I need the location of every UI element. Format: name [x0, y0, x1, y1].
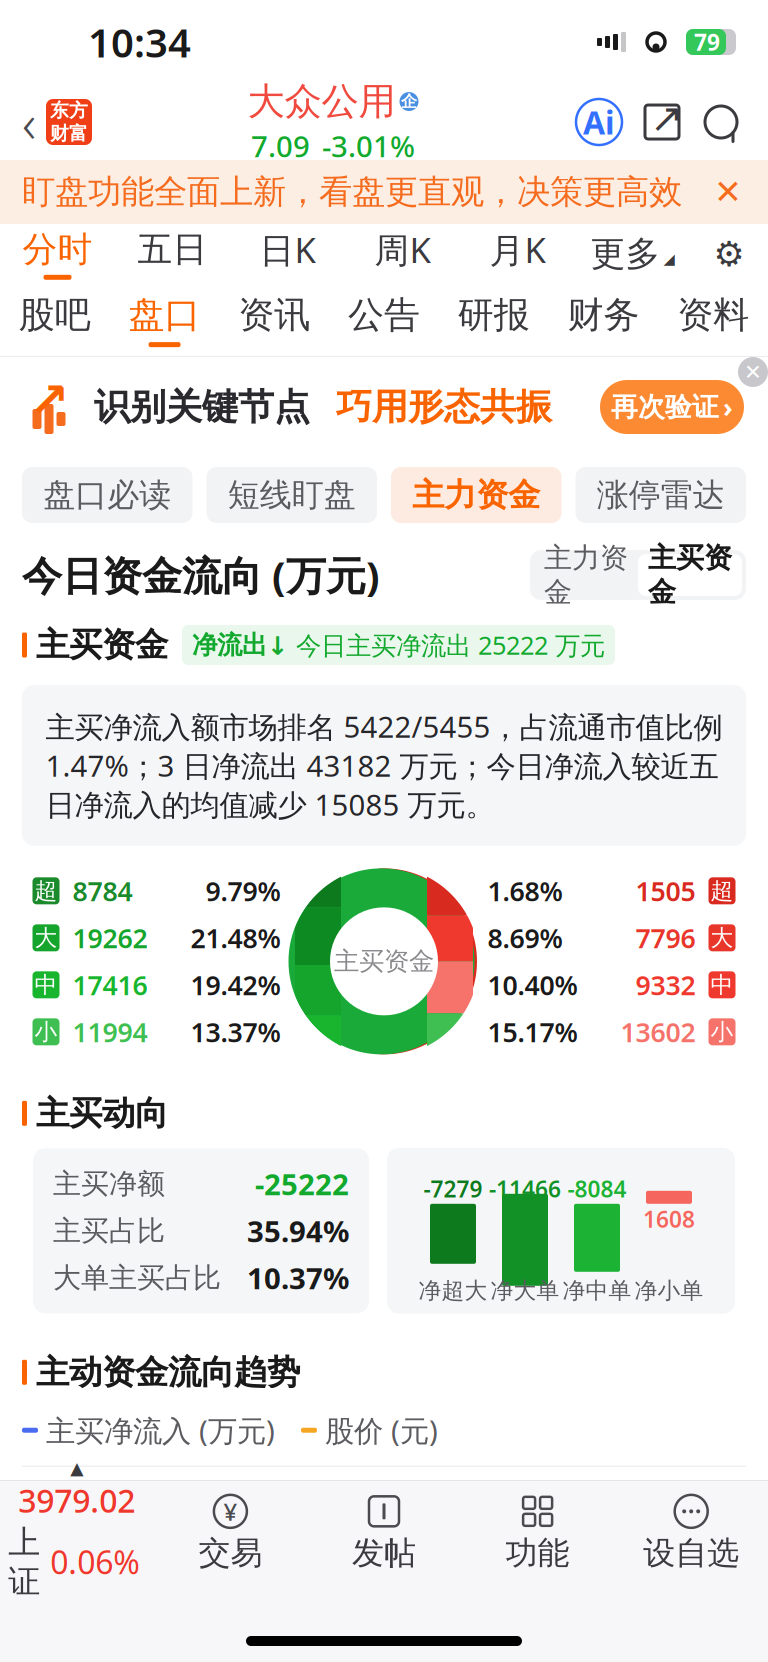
button[interactable]: 发帖	[307, 1493, 461, 1573]
staticText: 主力资金	[544, 541, 628, 609]
staticText: 大	[34, 924, 57, 952]
staticText: 13.37%	[190, 1014, 280, 1050]
staticText: 9332	[635, 967, 695, 1003]
staticText: 主买资金	[648, 541, 732, 609]
button[interactable]: ¥	[154, 1493, 307, 1573]
staticText: Ai	[583, 101, 615, 143]
button[interactable]: 设自选	[614, 1493, 768, 1573]
staticText: 盘口	[129, 293, 201, 337]
staticText: 10.40%	[487, 967, 577, 1003]
staticText: 公告	[348, 293, 420, 337]
staticText: 9.79%	[205, 873, 280, 909]
button[interactable]: 日K	[230, 224, 345, 284]
staticText: 17416	[72, 967, 147, 1003]
staticText: 7796	[635, 920, 695, 956]
button[interactable]: 盘口	[110, 284, 219, 356]
staticText: 大单主买占比	[53, 1261, 221, 1295]
staticText: ›	[723, 389, 733, 425]
button[interactable]: 功能	[461, 1493, 614, 1573]
staticText: -25222	[255, 1164, 349, 1203]
staticText: 净中单	[562, 1277, 631, 1305]
button[interactable]: ▲	[0, 1458, 154, 1608]
staticText: 13602	[620, 1014, 695, 1050]
button[interactable]: 盯盘功能全面上新，看盘更直观，决策更高效	[0, 160, 768, 224]
staticText: 研报	[458, 293, 530, 337]
button[interactable]: 主买资金	[638, 554, 742, 596]
staticText: -7279	[423, 1174, 482, 1204]
staticText: 企	[401, 92, 417, 111]
staticText: ⚙	[713, 234, 744, 274]
staticText: ↗	[29, 373, 69, 427]
staticText: 东方 财富	[50, 99, 88, 145]
staticText: 11994	[72, 1014, 147, 1050]
staticText: 超	[710, 877, 733, 905]
staticText: 主买净额	[53, 1167, 165, 1201]
staticText: 涨停雷达	[597, 475, 725, 515]
staticText: 净大单	[490, 1277, 559, 1305]
button[interactable]: 短线盯盘	[206, 467, 377, 523]
staticText: 1608	[643, 1204, 695, 1234]
button[interactable]: Share	[642, 101, 682, 143]
staticText: 周K	[374, 226, 430, 272]
staticText: -3.01%	[322, 126, 415, 165]
staticText: 19.42%	[190, 967, 280, 1003]
staticText: 五日	[137, 228, 207, 271]
button[interactable]: 盘口必读	[22, 467, 192, 523]
button[interactable]: 分时	[0, 224, 115, 284]
staticText: 主买资金	[334, 946, 434, 977]
button[interactable]: Search	[700, 101, 742, 143]
staticText: 大	[710, 924, 733, 952]
button[interactable]: 月K	[460, 224, 575, 284]
staticText: 再次验证	[611, 391, 719, 423]
staticText: 主买净流入 (万元)	[46, 1411, 275, 1450]
staticText: 主买净流入额市场排名 5422/5455，占流通市值比例 1.47%；3 日净流…	[45, 707, 722, 824]
staticText: 短线盯盘	[228, 475, 356, 515]
button[interactable]: Back	[0, 87, 92, 157]
staticText: 0.06%	[50, 1541, 140, 1583]
staticText: 35.94%	[247, 1211, 349, 1250]
button[interactable]: 研报	[439, 284, 549, 356]
staticText: 主动资金流向趋势	[36, 1352, 300, 1393]
staticText: 今日主买净流出 25222 万元	[296, 628, 605, 662]
button[interactable]: 主力资金	[534, 554, 638, 596]
staticText: 中	[710, 971, 733, 999]
button[interactable]: 资料	[658, 284, 768, 356]
button[interactable]: Chart settings	[690, 224, 768, 284]
staticText: 主买资金	[36, 624, 168, 665]
staticText: 巧用形态共振	[336, 385, 552, 429]
button[interactable]: 更多	[575, 224, 690, 284]
staticText: 上证	[8, 1523, 40, 1601]
staticText: 日K	[259, 226, 315, 272]
button[interactable]: 五日	[115, 224, 230, 284]
staticText: ↗	[650, 95, 684, 141]
button[interactable]: 股吧	[0, 284, 110, 356]
staticText: 识别关键节点	[94, 385, 310, 429]
staticText: 盯盘功能全面上新，看盘更直观，决策更高效	[22, 171, 682, 212]
staticText: 资讯	[238, 293, 310, 337]
button[interactable]: 公告	[329, 284, 439, 356]
staticText: 设自选	[643, 1533, 739, 1573]
button[interactable]: 主力资金	[391, 467, 561, 523]
staticText: 7.09	[251, 126, 310, 165]
button[interactable]: 涨停雷达	[575, 467, 746, 523]
button[interactable]: 周K	[345, 224, 460, 284]
staticText: ✕	[714, 173, 742, 211]
staticText: ▲	[70, 1458, 83, 1478]
staticText: 更多	[590, 233, 660, 275]
button[interactable]: Close promotion	[738, 357, 768, 387]
staticText: 财务	[567, 293, 639, 337]
staticText: 21.48%	[190, 920, 280, 956]
button[interactable]: 财务	[549, 284, 658, 356]
staticText: 15.17%	[487, 1014, 577, 1050]
staticText: 3979.02	[18, 1479, 135, 1522]
button[interactable]: 再次验证	[600, 380, 744, 434]
staticText: 79	[694, 27, 720, 57]
staticText: ¥	[223, 1495, 237, 1527]
staticText: 净小单	[634, 1277, 703, 1305]
staticText: 超	[34, 877, 57, 905]
staticText: 1.68%	[487, 873, 562, 909]
staticText: 分时	[22, 228, 92, 271]
staticText: 8.69%	[487, 920, 562, 956]
button[interactable]: 资讯	[219, 284, 329, 356]
button[interactable]: AI assistant	[574, 97, 624, 147]
